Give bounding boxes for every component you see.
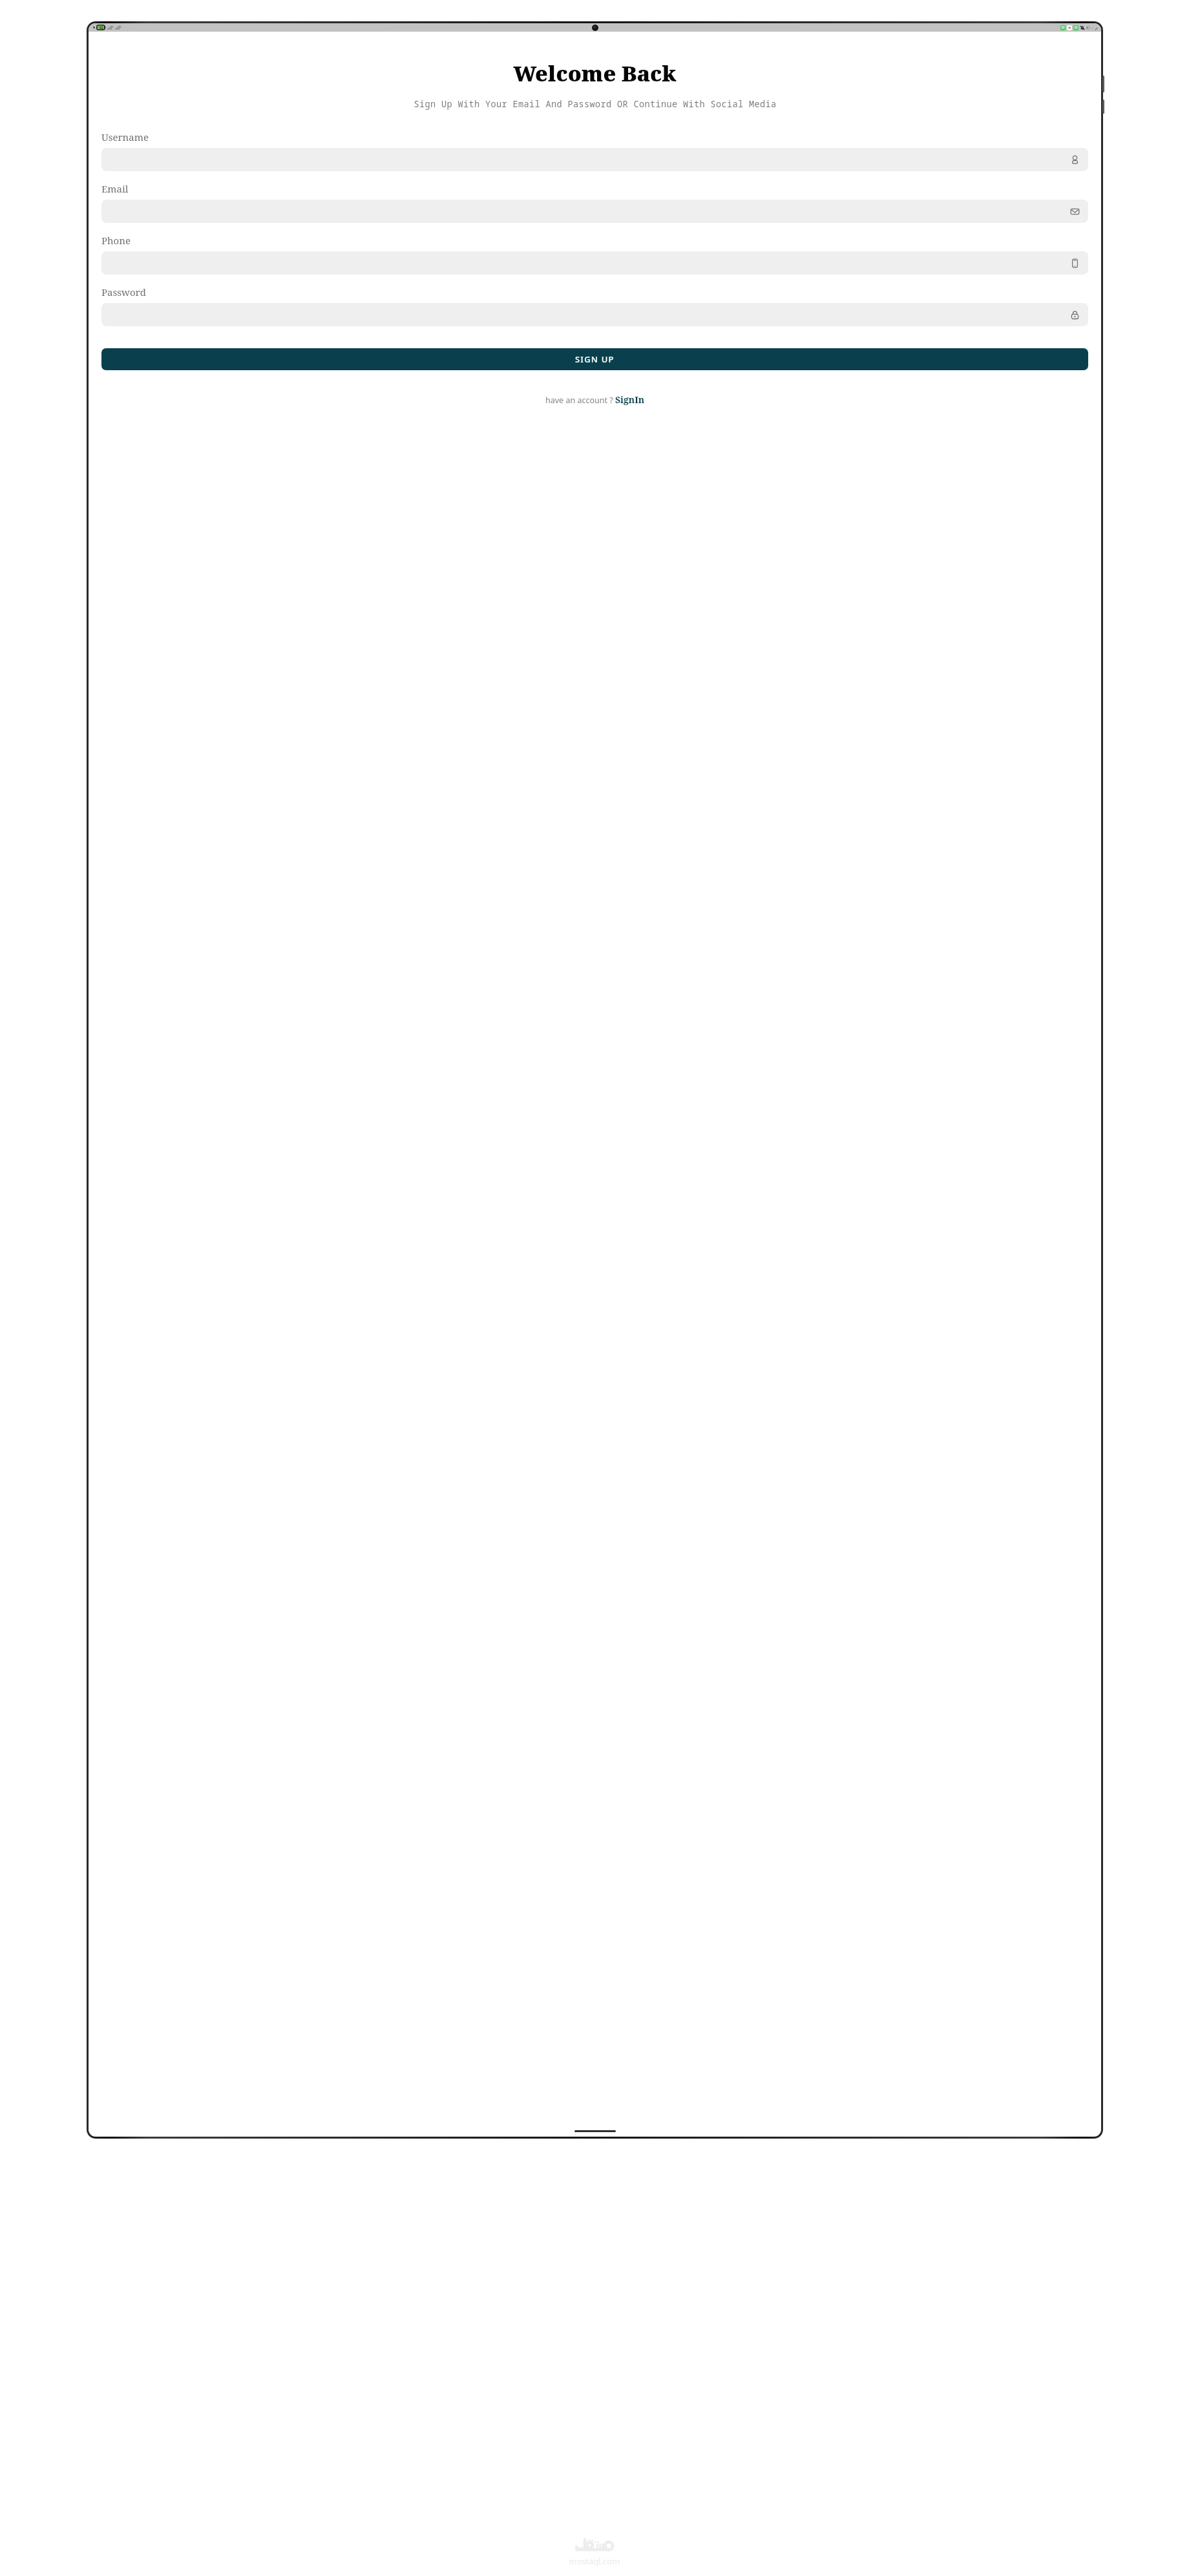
button[interactable]: Phone [101, 251, 1088, 275]
button[interactable]: have an account ? [545, 393, 645, 406]
staticText: Welcome Back [513, 59, 677, 88]
button[interactable]: SIGN UP [101, 348, 1088, 370]
other: Password [1070, 310, 1080, 320]
staticText: Sign Up With Your Email And Password OR … [136, 98, 1054, 110]
other: Email [1070, 207, 1080, 216]
staticText: Phone [101, 234, 131, 247]
staticText: SignIn [615, 393, 645, 406]
staticText: Username [101, 131, 149, 143]
button[interactable]: Password [101, 303, 1088, 326]
button[interactable]: Email [101, 200, 1088, 223]
staticText: م ٨:٠٠ [1086, 25, 1098, 30]
staticText: SIGN UP [575, 353, 615, 365]
button[interactable]: Username [101, 148, 1088, 171]
staticText: mostaql.com [569, 2555, 620, 2567]
staticText: 92 [100, 25, 103, 30]
staticText: have an account ? [545, 395, 615, 406]
other: Username [1070, 155, 1080, 165]
other: Phone [1070, 258, 1080, 268]
staticText: Password [101, 286, 146, 298]
staticText: Email [101, 182, 129, 195]
